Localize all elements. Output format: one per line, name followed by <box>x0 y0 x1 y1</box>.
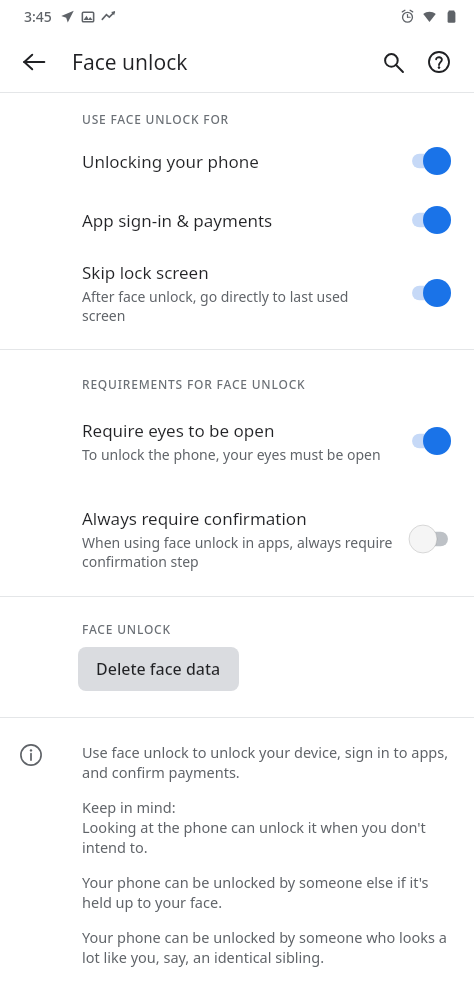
staticText: REQUIREMENTS FOR FACE UNLOCK <box>82 376 306 392</box>
button[interactable]: Help <box>416 39 462 85</box>
staticText: Skip lock screen <box>82 261 209 284</box>
button[interactable]: Delete face data <box>78 647 239 691</box>
staticText: Your phone can be unlocked by someone wh… <box>82 927 454 967</box>
staticText: Use face unlock to unlock your device, s… <box>82 742 454 782</box>
staticText: 3:45 <box>24 7 52 26</box>
button[interactable]: On <box>404 144 456 178</box>
button[interactable]: Off <box>404 522 456 556</box>
staticText: Keep in mind: Looking at the phone can u… <box>82 797 454 857</box>
staticText: USE FACE UNLOCK FOR <box>82 111 229 127</box>
button[interactable]: On <box>404 276 456 310</box>
staticText: FACE UNLOCK <box>82 621 171 637</box>
button[interactable]: Back <box>10 38 58 86</box>
button[interactable]: Search <box>370 39 416 85</box>
button[interactable]: Always require confirmation <box>0 496 474 582</box>
button[interactable]: Unlocking your phone <box>0 133 474 189</box>
staticText: Require eyes to be open <box>82 419 275 442</box>
staticText: When using face unlock in apps, always r… <box>82 533 394 571</box>
staticText: App sign-in & payments <box>82 209 273 232</box>
staticText: Unlocking your phone <box>82 150 259 173</box>
staticText: To unlock the phone, your eyes must be o… <box>82 445 381 464</box>
button[interactable]: App sign-in & payments <box>0 189 474 251</box>
button[interactable]: Skip lock screen <box>0 251 474 335</box>
staticText: Always require confirmation <box>82 507 307 530</box>
button[interactable]: On <box>404 203 456 237</box>
staticText: Face unlock <box>72 48 188 77</box>
button[interactable]: On <box>404 424 456 458</box>
staticText: After face unlock, go directly to last u… <box>82 287 394 325</box>
button[interactable]: Require eyes to be open <box>0 398 474 484</box>
staticText: Delete face data <box>96 658 221 680</box>
staticText: Your phone can be unlocked by someone el… <box>82 872 454 912</box>
